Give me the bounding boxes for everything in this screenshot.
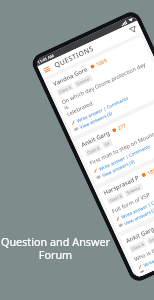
- button[interactable]: Harsprasad P: [97, 145, 154, 233]
- button[interactable]: Menu: [37, 20, 143, 78]
- staticText: On which day Ozone protection day is cel…: [60, 59, 154, 118]
- staticText: 1069: [95, 57, 109, 68]
- staticText: View answers (3): [123, 206, 154, 226]
- staticText: Who is the father of nation: [133, 227, 154, 262]
- staticText: Vandna Gore: [52, 65, 89, 88]
- staticText: First man to step on Mount Everest: [88, 122, 154, 166]
- staticText: Ankit Garg: [124, 225, 154, 245]
- button[interactable]: Vandna Gore: [47, 36, 154, 137]
- staticText: View answers (3): [79, 109, 114, 130]
- staticText: Write answer | Comments: [76, 95, 129, 124]
- staticText: Full form of VSP: [111, 191, 151, 214]
- staticText: Harsprasad P: [102, 173, 141, 197]
- staticText: 11:41 AM: [37, 53, 55, 65]
- staticText: Science: [75, 76, 91, 87]
- staticText: Class 8: [109, 193, 122, 203]
- button[interactable]: Ankit Garg: [75, 97, 154, 185]
- staticText: Ankit Garg: [80, 129, 111, 149]
- staticText: Class 6: [58, 85, 72, 95]
- button[interactable]: Filter: [128, 25, 138, 34]
- staticText: Science: [126, 185, 141, 195]
- staticText: Class 8: [131, 242, 145, 252]
- staticText: GK: [104, 140, 111, 147]
- staticText: Write answer | Comments: [120, 191, 154, 220]
- staticText: Class 8: [86, 145, 100, 155]
- staticText: 277: [117, 122, 128, 132]
- staticText: Write answer | Comments: [142, 239, 154, 268]
- button[interactable]: Ankit Garg: [119, 193, 154, 278]
- staticText: View answers (3): [145, 254, 154, 271]
- staticText: View answers (3): [101, 158, 136, 178]
- staticText: 189: [146, 167, 154, 177]
- staticText: Write answer | Comments: [98, 143, 151, 172]
- staticText: GK: [148, 236, 154, 244]
- staticText: Question and Answer Forum: [0, 234, 111, 262]
- staticText: QUESTIONS: [53, 44, 96, 71]
- button[interactable]: Menu: [42, 65, 52, 74]
